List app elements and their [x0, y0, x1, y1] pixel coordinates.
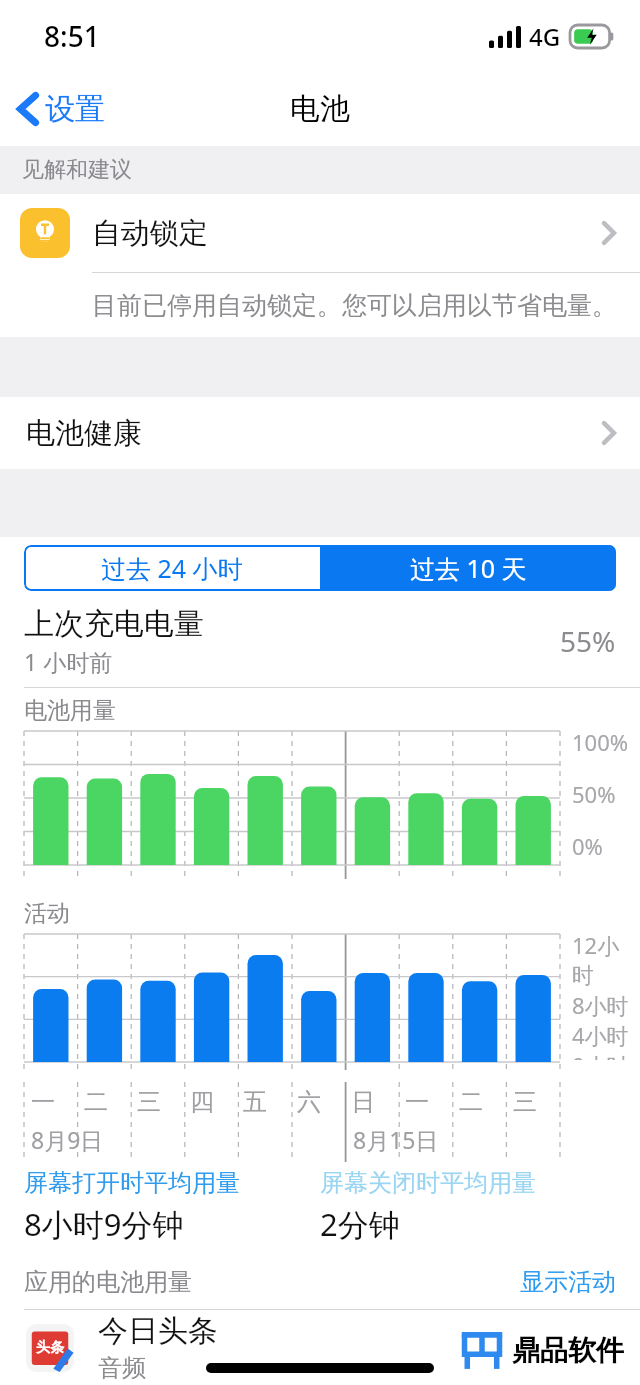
- staticText: 电池用量: [24, 696, 116, 725]
- other: 鼎品软件 logo: [459, 1329, 505, 1371]
- button[interactable]: 电池健康: [0, 397, 640, 469]
- staticText: 4小时: [572, 1020, 629, 1050]
- button[interactable]: 过去 10 天: [320, 545, 616, 591]
- staticText: 鼎品软件: [512, 1333, 624, 1368]
- staticText: 4G: [529, 20, 561, 53]
- staticText: 2分钟: [320, 1203, 400, 1245]
- staticText: 日: [351, 1087, 375, 1117]
- staticText: 12小时: [572, 930, 640, 990]
- staticText: 8小时: [572, 990, 629, 1020]
- button[interactable]: 自动锁定: [0, 194, 640, 272]
- staticText: 今日头条: [98, 1312, 218, 1350]
- button[interactable]: 显示活动: [520, 1267, 616, 1297]
- staticText: 过去 24 小时: [101, 551, 243, 585]
- staticText: 三: [513, 1087, 537, 1117]
- button[interactable]: 头条: [0, 1310, 640, 1385]
- staticText: 55%: [560, 622, 616, 660]
- other: More: [601, 220, 616, 246]
- staticText: 过去 10 天: [410, 551, 527, 585]
- staticText: 见解和建议: [22, 156, 132, 184]
- button[interactable]: 过去 24 小时: [24, 545, 320, 591]
- staticText: 设置: [45, 90, 105, 128]
- staticText: 一: [405, 1087, 429, 1117]
- staticText: 应用的电池用量: [24, 1267, 192, 1297]
- staticText: 屏幕关闭时平均用量: [320, 1168, 536, 1198]
- staticText: 电池健康: [26, 415, 142, 452]
- staticText: 六: [297, 1087, 321, 1117]
- staticText: 1 小时前: [24, 646, 113, 677]
- staticText: 电池: [290, 90, 350, 128]
- staticText: 8月15日: [353, 1124, 439, 1155]
- staticText: 活动: [24, 899, 70, 928]
- staticText: 二: [459, 1087, 483, 1117]
- staticText: 头条: [36, 1339, 64, 1357]
- staticText: 自动锁定: [92, 215, 208, 252]
- staticText: 上次充电电量: [24, 605, 204, 643]
- staticText: 8小时9分钟: [24, 1203, 184, 1245]
- staticText: 目前已停用自动锁定。您可以启用以节省电量。: [92, 290, 617, 321]
- staticText: 8:51: [44, 17, 100, 55]
- staticText: 五: [243, 1087, 267, 1117]
- staticText: 0小时: [572, 1050, 629, 1060]
- staticText: 8月9日: [31, 1124, 104, 1155]
- staticText: 0%: [572, 831, 603, 861]
- staticText: 显示活动: [520, 1267, 616, 1297]
- staticText: 50%: [572, 779, 616, 809]
- staticText: 音频: [98, 1353, 146, 1383]
- staticText: 二: [84, 1087, 108, 1117]
- staticText: 三: [137, 1087, 161, 1117]
- staticText: 一: [31, 1087, 55, 1117]
- staticText: 四: [190, 1087, 214, 1117]
- staticText: 100%: [572, 727, 629, 757]
- button[interactable]: 设置: [0, 82, 119, 136]
- other: More: [601, 420, 616, 446]
- staticText: 屏幕打开时平均用量: [24, 1168, 240, 1198]
